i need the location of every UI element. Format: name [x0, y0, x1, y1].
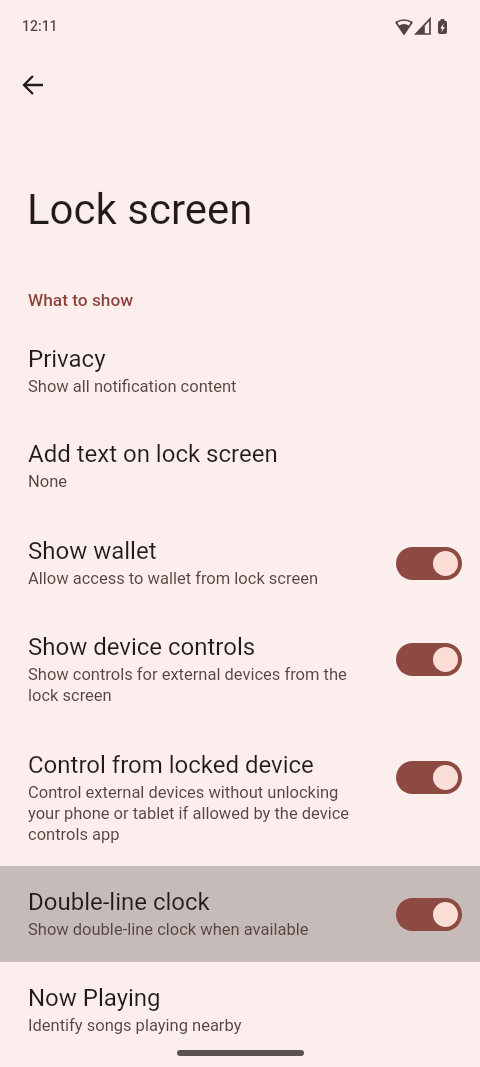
button[interactable]: Show device controls — [0, 611, 480, 729]
button[interactable]: Double-line clock — [0, 866, 480, 962]
staticText: Show device controls — [28, 633, 256, 661]
button[interactable]: Toggle — [396, 643, 462, 676]
button[interactable]: Control from locked device — [0, 729, 480, 866]
staticText: Control external devices without unlocki… — [28, 783, 360, 844]
button[interactable]: Toggle — [396, 547, 462, 580]
staticText: Lock screen — [27, 185, 253, 234]
button[interactable]: Toggle — [396, 761, 462, 794]
staticText: Allow access to wallet from lock screen — [28, 569, 319, 588]
button[interactable]: Privacy — [0, 323, 480, 418]
staticText: Control from locked device — [28, 751, 314, 779]
staticText: None — [28, 472, 68, 491]
button[interactable]: Back — [9, 61, 57, 109]
staticText: What to show — [28, 290, 134, 310]
button[interactable]: Now Playing — [0, 962, 480, 1058]
staticText: Now Playing — [28, 984, 161, 1012]
staticText: Double-line clock — [28, 888, 210, 916]
staticText: Privacy — [28, 345, 106, 373]
button[interactable]: Add text on lock screen — [0, 418, 480, 515]
staticText: Show controls for external devices from … — [28, 665, 360, 705]
staticText: Add text on lock screen — [28, 440, 278, 468]
staticText: Show all notification content — [28, 377, 237, 396]
staticText: Show wallet — [28, 537, 157, 565]
staticText: 12:11 — [22, 18, 58, 34]
button[interactable]: Show wallet — [0, 515, 480, 611]
button[interactable]: Toggle — [396, 898, 462, 931]
staticText: Identify songs playing nearby — [28, 1016, 242, 1035]
staticText: Show double-line clock when available — [28, 920, 309, 939]
